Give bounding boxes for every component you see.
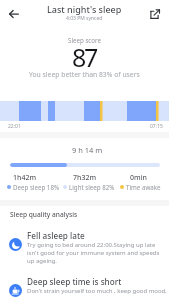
staticText: Sleep score — [68, 36, 101, 44]
staticText: 9 h 14 m — [72, 145, 103, 155]
staticText: Deep sleep time is short — [27, 276, 122, 287]
staticText: 87 — [72, 40, 97, 74]
staticText: Don't strain yourself too much , keep go… — [27, 287, 167, 295]
staticText: 07:15 — [150, 123, 163, 130]
staticText: Last night's sleep — [47, 3, 122, 15]
staticText: 7h32m — [73, 173, 97, 183]
staticText: Deep sleep 18% — [13, 183, 60, 191]
button[interactable]: Share — [146, 5, 164, 23]
staticText: 22:01 — [8, 123, 21, 130]
staticText: Try going to bed around 22:00.Staying up… — [27, 241, 160, 265]
staticText: Fell asleep late — [27, 230, 85, 241]
staticText: 0min — [130, 173, 147, 183]
staticText: Sleep quality analysis — [10, 210, 78, 219]
staticText: You sleep better than 83% of users — [29, 70, 140, 79]
staticText: 1h42m — [13, 173, 37, 183]
button[interactable]: Back — [5, 5, 23, 23]
staticText: 4:03 PM synced — [66, 15, 103, 22]
staticText: Light sleep 82% — [69, 183, 115, 191]
staticText: Time awake — [126, 183, 161, 191]
button[interactable]: Fell asleep late — [0, 230, 169, 265]
button[interactable]: Deep sleep time is short — [0, 276, 169, 295]
